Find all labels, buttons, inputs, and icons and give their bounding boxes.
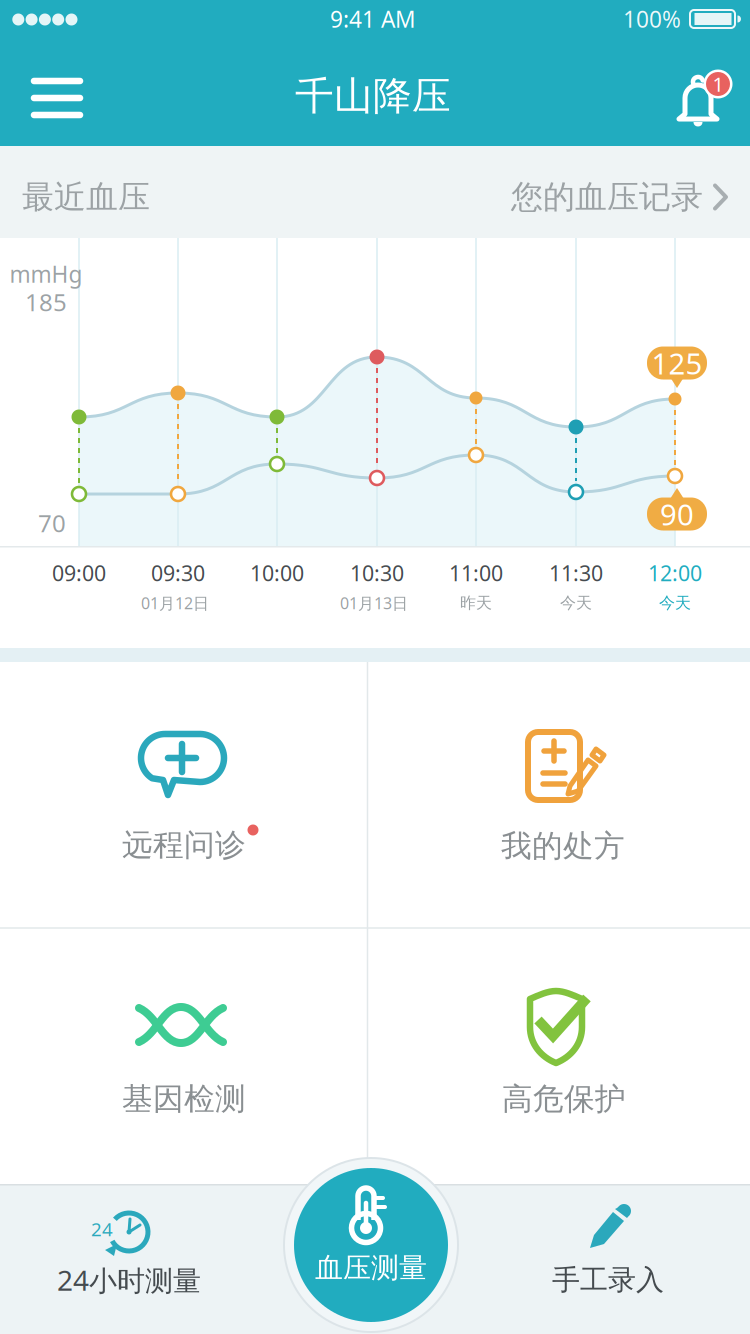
- staticText: 01月12日: [141, 592, 209, 614]
- staticText: 基因检测: [122, 1080, 246, 1118]
- button[interactable]: 血压测量: [283, 1157, 459, 1333]
- staticText: 09:30: [151, 559, 205, 587]
- staticText: 9:41 AM: [330, 4, 416, 34]
- staticText: 100%: [623, 4, 681, 34]
- staticText: 185: [25, 286, 67, 318]
- staticText: 12:00: [648, 559, 702, 587]
- staticText: 01月13日: [340, 592, 408, 614]
- staticText: 24: [91, 1217, 113, 1241]
- staticText: 11:30: [549, 559, 603, 587]
- button[interactable]: 24: [0, 1184, 250, 1334]
- staticText: 远程问诊: [122, 826, 246, 864]
- staticText: 手工录入: [552, 1263, 664, 1297]
- staticText: 10:00: [250, 559, 304, 587]
- staticText: 10:30: [350, 559, 404, 587]
- button[interactable]: 基因检测: [0, 928, 367, 1184]
- button[interactable]: 您的血压记录: [511, 177, 729, 217]
- staticText: 24小时测量: [57, 1261, 201, 1299]
- button[interactable]: 高危保护: [368, 928, 749, 1184]
- staticText: 11:00: [449, 559, 503, 587]
- staticText: 1: [712, 71, 723, 97]
- button[interactable]: 我的处方: [368, 662, 749, 928]
- staticText: 125: [651, 343, 702, 382]
- staticText: 血压测量: [315, 1251, 427, 1285]
- staticText: 我的处方: [501, 827, 625, 865]
- staticText: 90: [660, 494, 694, 533]
- staticText: 您的血压记录: [511, 177, 703, 217]
- staticText: 09:00: [52, 559, 106, 587]
- button[interactable]: Notifications: [668, 64, 740, 128]
- staticText: 昨天: [460, 593, 492, 613]
- staticText: mmHg: [9, 259, 82, 289]
- staticText: 高危保护: [502, 1080, 626, 1118]
- staticText: 70: [38, 507, 66, 539]
- button[interactable]: 手工录入: [500, 1184, 750, 1334]
- button[interactable]: Menu: [21, 77, 93, 119]
- staticText: 今天: [659, 593, 691, 613]
- staticText: 最近血压: [22, 177, 150, 217]
- staticText: 今天: [560, 593, 592, 613]
- button[interactable]: 远程问诊: [0, 662, 367, 928]
- staticText: 千山降压: [295, 72, 451, 120]
